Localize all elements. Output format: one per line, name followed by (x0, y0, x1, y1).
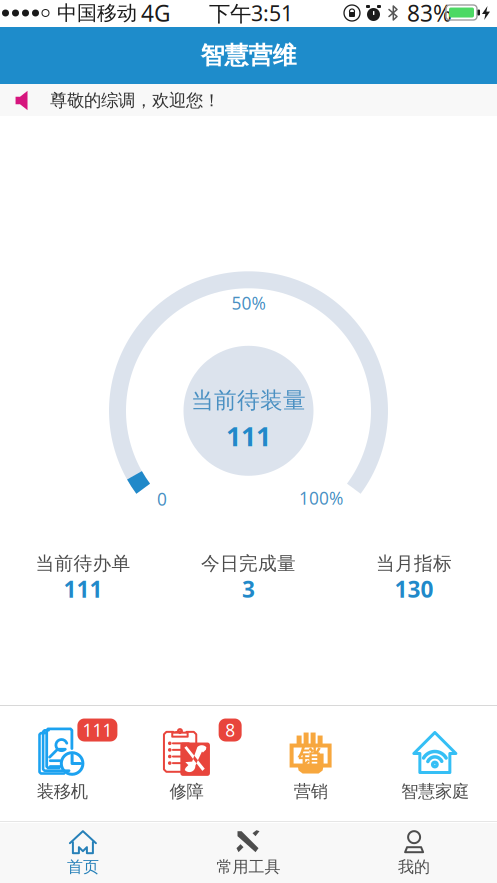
staticText: 8 (225, 718, 235, 741)
button[interactable]: 8 (124, 706, 248, 821)
staticText: 3 (242, 574, 255, 604)
staticText: 中国移动 (57, 1, 137, 25)
staticText: 下午3:51 (209, 0, 293, 27)
staticText: 111 (226, 418, 271, 454)
staticText: 当前待装量 (191, 387, 306, 414)
staticText: 首页 (67, 857, 99, 877)
staticText: 当月指标 (376, 552, 452, 575)
staticText: 今日完成量 (201, 552, 296, 575)
button[interactable]: 销 (248, 706, 373, 821)
staticText: 智慧营维 (200, 41, 296, 70)
staticText: 130 (395, 574, 434, 604)
staticText: 尊敬的综调，欢迎您！ (50, 90, 220, 111)
staticText: 50% (231, 291, 265, 314)
button[interactable]: 我的 (331, 823, 497, 883)
staticText: 4G (141, 0, 171, 28)
staticText: 营销 (294, 781, 328, 802)
staticText: 装移机 (37, 781, 88, 802)
staticText: 当前待办单 (35, 552, 130, 575)
staticText: 83% (407, 0, 452, 28)
staticText: 常用工具 (216, 857, 280, 877)
staticText: 智慧家庭 (401, 781, 469, 802)
staticText: 111 (63, 574, 102, 604)
staticText: 111 (82, 718, 112, 741)
staticText: 修障 (169, 781, 203, 802)
button[interactable]: 111 (0, 706, 124, 821)
button[interactable]: 首页 (0, 823, 166, 883)
staticText: 0 (157, 487, 167, 510)
staticText: 销 (298, 744, 321, 771)
button[interactable]: 常用工具 (166, 823, 331, 883)
staticText: 100% (299, 486, 343, 509)
staticText: 我的 (398, 857, 430, 877)
button[interactable]: 智慧家庭 (373, 706, 497, 821)
